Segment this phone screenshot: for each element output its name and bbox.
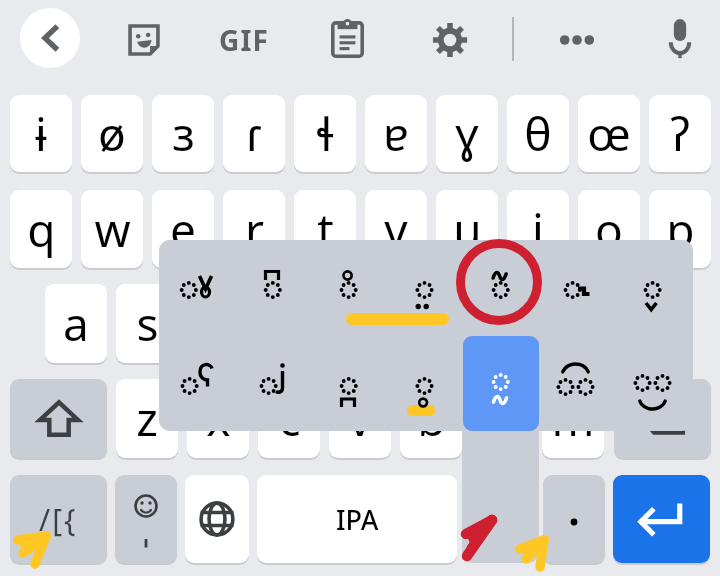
button[interactable]: GIF bbox=[212, 12, 277, 68]
staticText: v bbox=[348, 387, 372, 450]
staticText: i bbox=[532, 198, 544, 261]
button[interactable]: f bbox=[258, 284, 320, 363]
staticText: ɐ bbox=[383, 102, 409, 165]
button[interactable]: d bbox=[187, 284, 249, 363]
button[interactable]: ɐ bbox=[365, 95, 427, 172]
staticText: a bbox=[63, 292, 89, 355]
button[interactable]: ɜ bbox=[152, 95, 214, 172]
staticText: d bbox=[204, 292, 233, 355]
button[interactable]: m bbox=[542, 379, 604, 458]
staticText: c bbox=[278, 387, 301, 450]
button[interactable]: t bbox=[294, 190, 356, 268]
button[interactable]: k bbox=[542, 284, 604, 363]
button[interactable]: v bbox=[329, 379, 391, 458]
staticText: e bbox=[170, 198, 196, 261]
button[interactable]: z bbox=[116, 379, 178, 458]
button[interactable]: θ bbox=[507, 95, 569, 172]
button[interactable]: IPA bbox=[257, 475, 457, 563]
staticText: ʔ bbox=[670, 102, 690, 165]
staticText: o bbox=[595, 198, 623, 261]
button[interactable]: r bbox=[223, 190, 285, 268]
staticText: v bbox=[384, 198, 408, 261]
button[interactable] bbox=[115, 475, 177, 563]
button[interactable]: e bbox=[152, 190, 214, 268]
staticText: r bbox=[245, 198, 264, 261]
button[interactable]: i bbox=[507, 190, 569, 268]
button[interactable] bbox=[10, 379, 107, 458]
button[interactable]: ø bbox=[81, 95, 143, 172]
staticText: z bbox=[136, 387, 158, 450]
button[interactable]: More options bbox=[551, 14, 603, 66]
button[interactable]: Voice input bbox=[654, 12, 706, 64]
button[interactable]: /[{ bbox=[10, 475, 107, 563]
button[interactable]: œ bbox=[578, 95, 640, 172]
staticText: /[{ bbox=[39, 499, 78, 540]
staticText: ɜ bbox=[172, 102, 195, 165]
staticText: w bbox=[94, 198, 131, 261]
staticText: u bbox=[453, 198, 482, 261]
button[interactable]: h bbox=[400, 284, 462, 363]
button[interactable] bbox=[543, 475, 605, 563]
button[interactable]: x bbox=[187, 379, 249, 458]
button[interactable]: ʔ bbox=[649, 95, 711, 172]
button[interactable]: v bbox=[365, 190, 427, 268]
staticText: m bbox=[551, 387, 595, 450]
button[interactable]: g bbox=[329, 284, 391, 363]
button[interactable]: ɨ bbox=[10, 95, 72, 172]
staticText: œ bbox=[587, 102, 631, 165]
button[interactable]: ɾ bbox=[223, 95, 285, 172]
button[interactable]: l bbox=[613, 284, 675, 363]
staticText: j bbox=[496, 292, 508, 355]
staticText: g bbox=[346, 292, 375, 355]
staticText: k bbox=[561, 292, 586, 355]
button[interactable]: ɬ bbox=[294, 95, 356, 172]
button[interactable]: s bbox=[116, 284, 178, 363]
staticText: θ bbox=[524, 102, 552, 165]
staticText: b bbox=[417, 387, 446, 450]
button[interactable]: u bbox=[436, 190, 498, 268]
staticText: x bbox=[206, 387, 231, 450]
button[interactable] bbox=[614, 379, 711, 458]
button[interactable]: c bbox=[258, 379, 320, 458]
staticText: s bbox=[136, 292, 159, 355]
staticText: p bbox=[666, 198, 695, 261]
button[interactable]: w bbox=[81, 190, 143, 268]
staticText: ø bbox=[98, 102, 126, 165]
button[interactable]: a bbox=[45, 284, 107, 363]
staticText: ɨ bbox=[35, 102, 47, 165]
staticText: IPA bbox=[336, 501, 379, 538]
button[interactable] bbox=[613, 475, 710, 563]
button[interactable]: b bbox=[400, 379, 462, 458]
staticText: t bbox=[317, 198, 334, 261]
button[interactable]: ɣ bbox=[436, 95, 498, 172]
button[interactable]: Settings bbox=[424, 14, 476, 66]
button[interactable]: p bbox=[649, 190, 711, 268]
staticText: ɾ bbox=[246, 102, 262, 165]
staticText: ɬ bbox=[317, 102, 334, 165]
staticText: n bbox=[488, 387, 517, 450]
staticText: q bbox=[27, 198, 56, 261]
button[interactable]: Clipboard bbox=[321, 12, 373, 64]
button[interactable]: j bbox=[471, 284, 533, 363]
button[interactable]: o bbox=[578, 190, 640, 268]
staticText: ɣ bbox=[455, 102, 479, 165]
staticText: l bbox=[638, 292, 650, 355]
button[interactable]: Back bbox=[20, 8, 80, 68]
button[interactable] bbox=[185, 475, 249, 563]
button[interactable]: Stickers bbox=[118, 14, 170, 66]
staticText: GIF bbox=[219, 21, 270, 59]
button[interactable]: q bbox=[10, 190, 72, 268]
button[interactable]: n bbox=[471, 379, 533, 458]
staticText: h bbox=[417, 292, 446, 355]
